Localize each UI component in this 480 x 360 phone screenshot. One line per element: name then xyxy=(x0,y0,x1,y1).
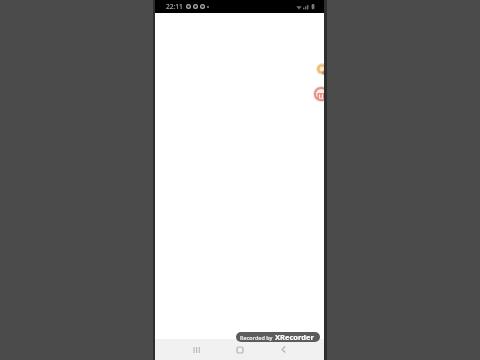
button[interactable]: Chat chip xyxy=(313,86,324,102)
staticText: XRecorder xyxy=(275,332,314,342)
button[interactable]: Back xyxy=(275,339,291,360)
button[interactable]: Recents xyxy=(188,339,204,360)
staticText: 22:11 xyxy=(166,2,183,11)
button[interactable]: Notification chip xyxy=(316,63,324,75)
staticText: m xyxy=(317,89,324,100)
staticText: Recorded by xyxy=(240,334,273,341)
button[interactable]: Home xyxy=(232,339,248,360)
